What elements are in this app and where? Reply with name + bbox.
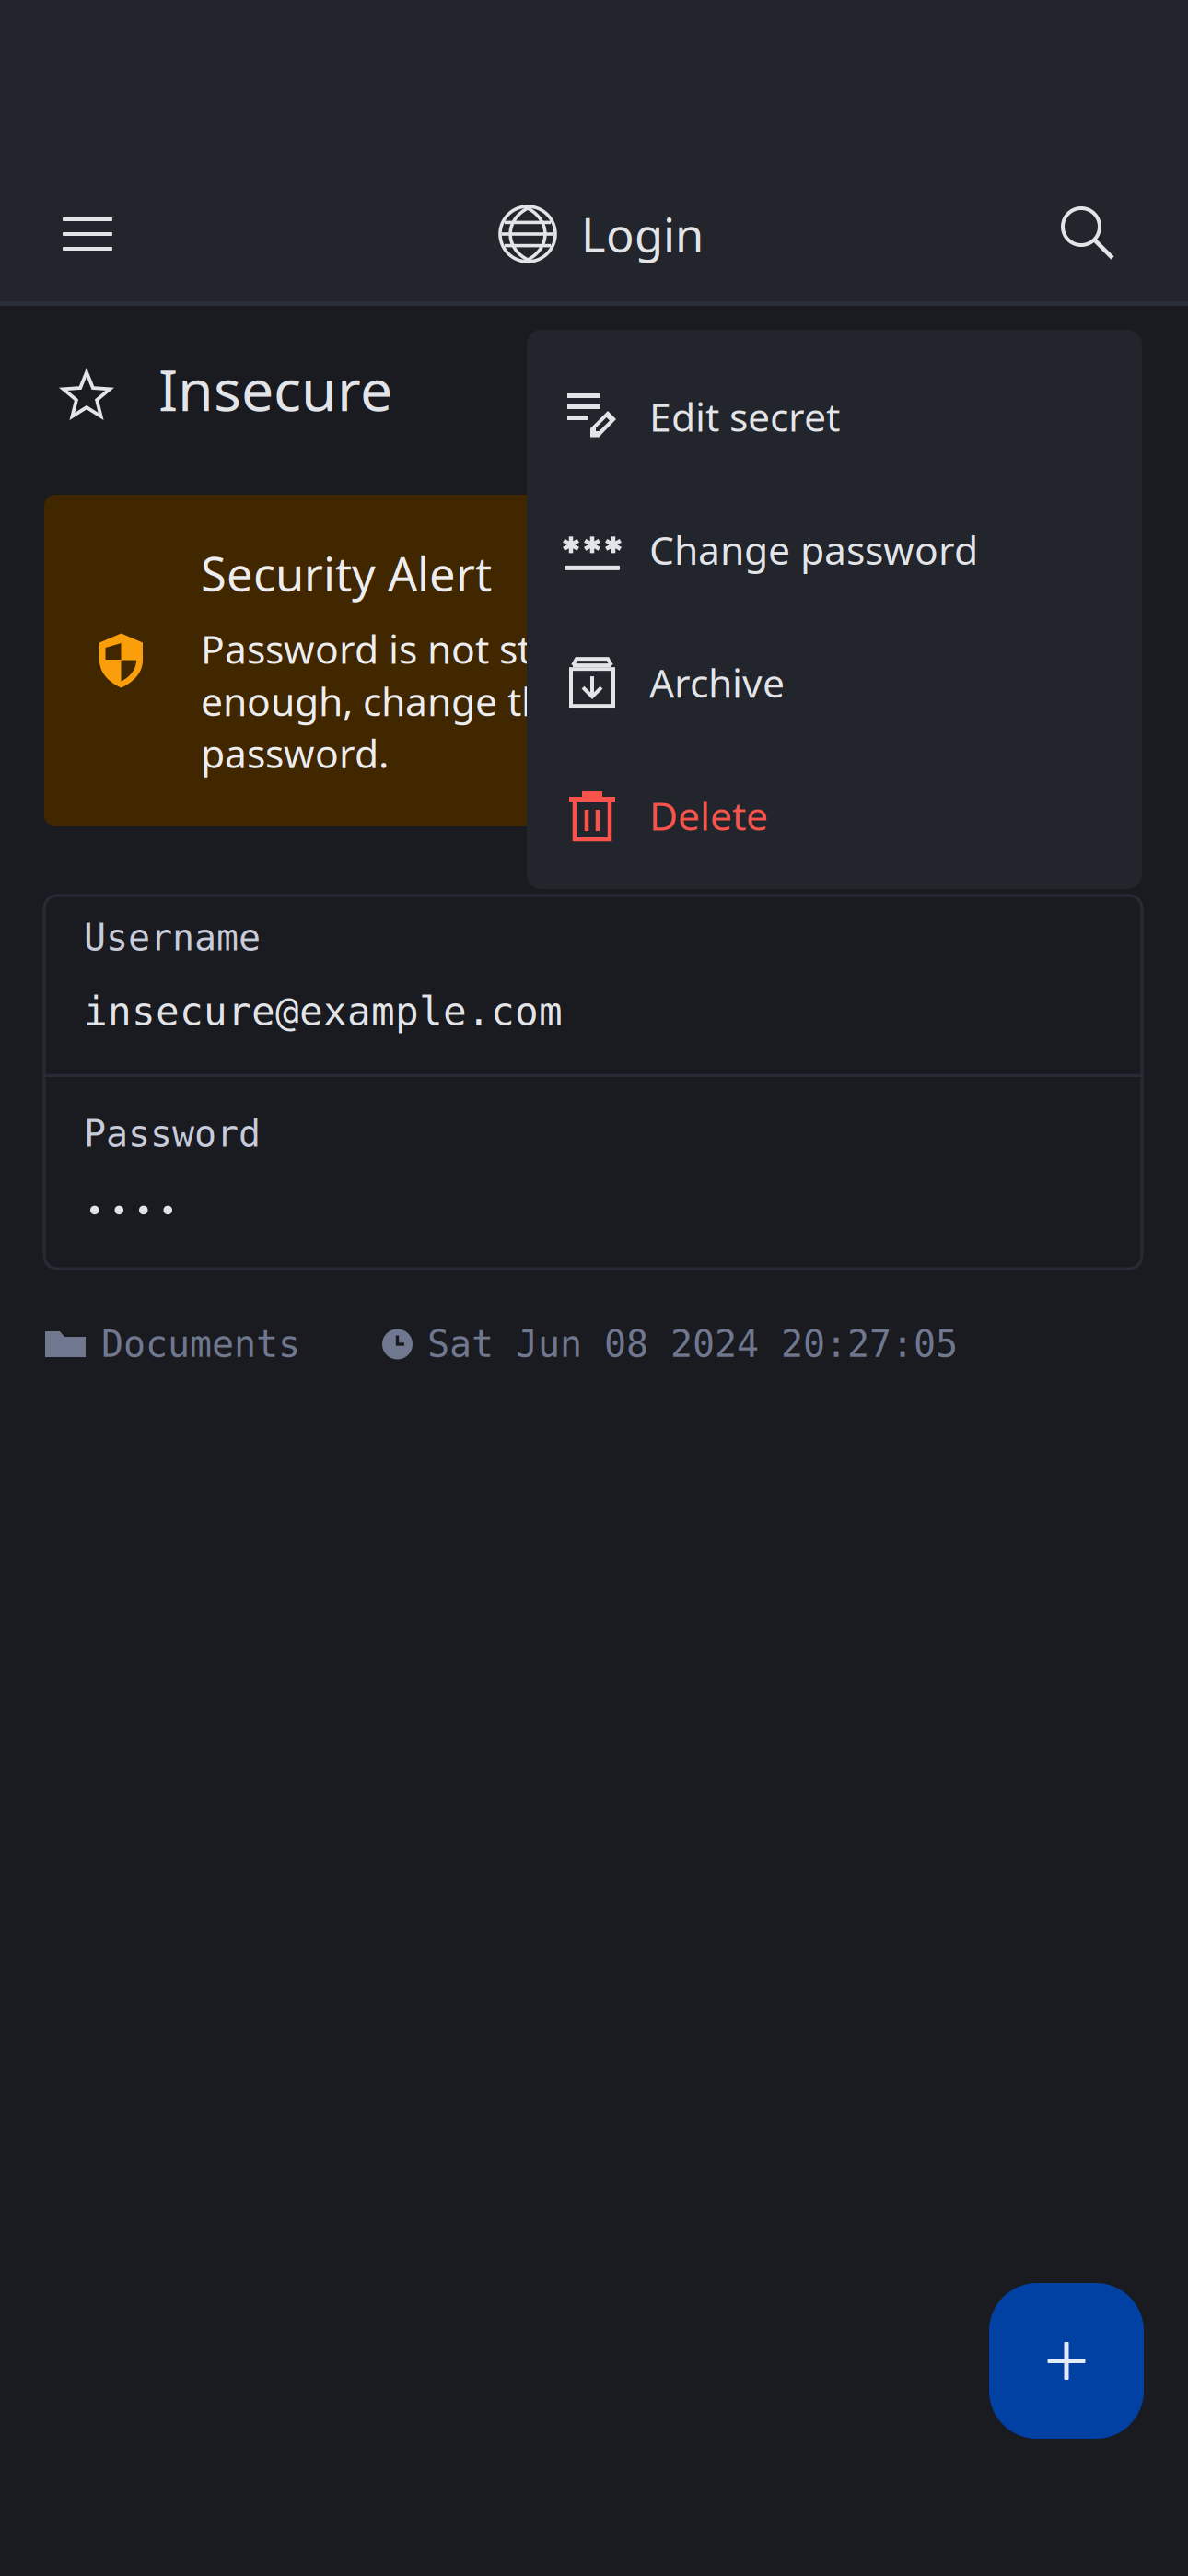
button[interactable]: Add secret xyxy=(989,2283,1144,2439)
button[interactable]: Password xyxy=(44,1077,1142,1269)
staticText: insecure@example.com xyxy=(84,989,563,1034)
button[interactable]: Search xyxy=(1038,183,1139,285)
button[interactable]: Menu xyxy=(37,183,138,285)
staticText: Sat Jun 08 2024 20:27:05 xyxy=(427,1323,958,1365)
staticText: Username xyxy=(84,917,261,959)
button[interactable]: Edit secret xyxy=(527,350,1142,483)
staticText: Edit secret xyxy=(649,390,840,443)
staticText: Security Alert xyxy=(201,542,492,604)
staticText: Login xyxy=(581,203,704,265)
button[interactable]: Change password xyxy=(527,483,1142,616)
button[interactable]: Delete xyxy=(527,749,1142,882)
staticText: Insecure xyxy=(158,350,392,427)
staticText: Delete xyxy=(649,789,768,842)
button[interactable]: Favourite xyxy=(61,371,112,422)
staticText: Change password xyxy=(649,523,978,576)
button[interactable]: Username xyxy=(44,896,1142,1074)
staticText: Password is not strong enough, change th… xyxy=(201,623,619,779)
staticText: Archive xyxy=(649,656,785,708)
staticText: Password xyxy=(84,1113,261,1155)
button[interactable]: Archive xyxy=(527,616,1142,749)
staticText: Documents xyxy=(101,1323,300,1365)
